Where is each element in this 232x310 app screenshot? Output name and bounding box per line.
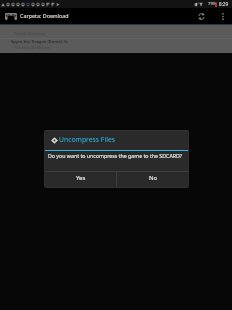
staticText: Spyro the Dragon (Demo).7z xyxy=(11,39,68,45)
button[interactable]: Spyro the Dragon (Demo).7z xyxy=(0,39,232,53)
staticText: Carpeta: Download xyxy=(20,12,69,19)
button[interactable]: Yes xyxy=(45,172,116,187)
other: App icon xyxy=(5,13,17,20)
staticText: 8:29 xyxy=(219,1,229,7)
staticText: Uncompress Files xyxy=(59,135,115,144)
button[interactable]: More options xyxy=(216,8,229,24)
button[interactable]: Refresh xyxy=(193,8,209,24)
staticText: Parent Directory xyxy=(14,31,46,37)
staticText: Do you want to uncompress the game to th… xyxy=(48,152,183,159)
staticText: 79% xyxy=(208,1,217,7)
staticText: Yes xyxy=(76,174,86,182)
staticText: No xyxy=(149,174,158,182)
staticText: File Size: 29 Mbytes xyxy=(14,45,51,50)
button[interactable]: No xyxy=(117,172,188,187)
